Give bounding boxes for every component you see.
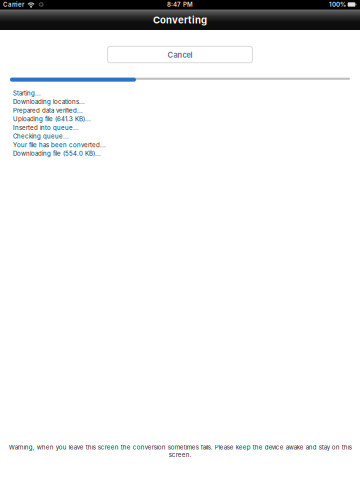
staticText: Downloading locations... [13,98,85,105]
staticText: Inserted into queue... [13,124,79,131]
staticText: Carrier [3,1,24,8]
staticText: Checking queue... [13,133,69,140]
staticText: Cancel [167,51,192,60]
staticText: Your file has been converted... [13,141,106,149]
button[interactable]: Cancel [107,46,252,63]
staticText: Prepared data verified... [13,107,83,114]
staticText: Converting [153,14,207,26]
staticText: 100% [329,1,346,8]
staticText: Starting... [13,89,41,97]
staticText: Warning, when you leave this screen the … [8,444,351,458]
staticText: Uploading file (641.3 KB)... [13,115,91,123]
staticText: 8:47 PM [167,1,193,8]
staticText: Downloading file (554.0 KB)... [13,150,101,157]
